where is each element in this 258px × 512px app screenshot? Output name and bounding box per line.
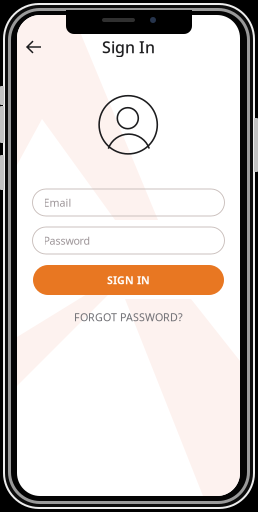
staticText: SIGN IN [107,273,150,287]
staticText: Sign In [102,36,155,58]
staticText: Password [43,233,90,248]
button[interactable]: Password [32,227,224,254]
button[interactable]: Email [32,189,224,216]
staticText: Email [43,195,71,210]
button[interactable]: Back [18,32,50,62]
button[interactable]: FORGOT PASSWORD? [74,310,183,324]
staticText: FORGOT PASSWORD? [74,310,183,324]
button[interactable]: SIGN IN [33,265,224,295]
